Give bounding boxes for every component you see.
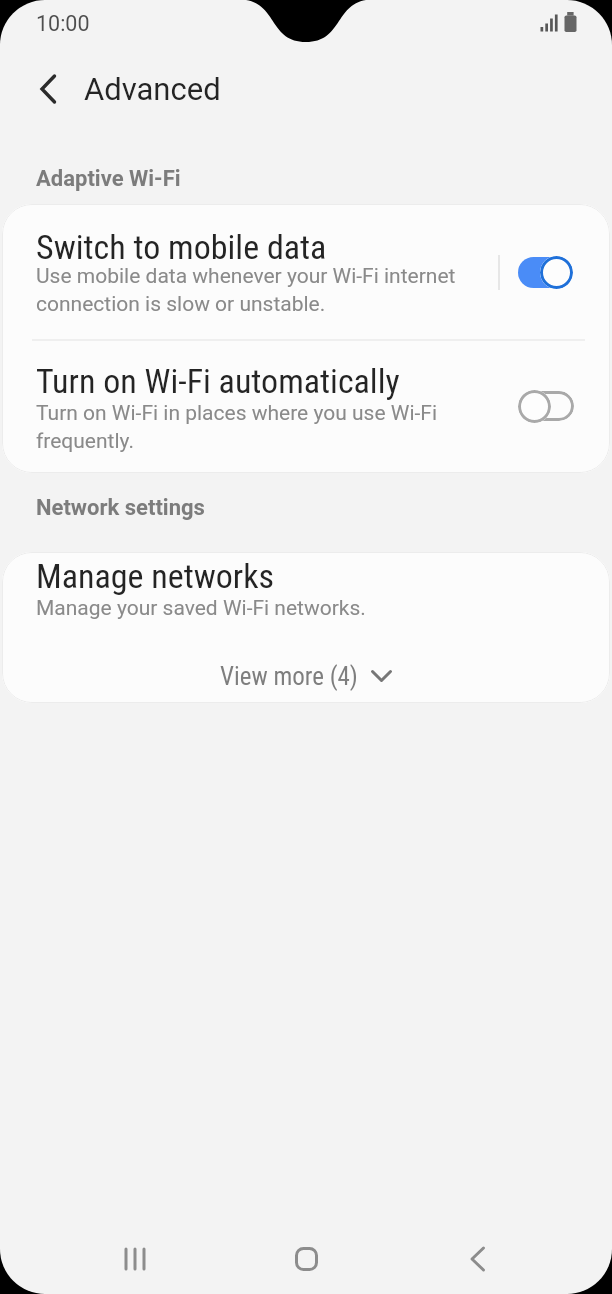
staticText: Manage networks <box>36 556 275 596</box>
staticText: Use mobile data whenever your Wi-Fi inte… <box>36 264 456 316</box>
staticText: Turn on Wi-Fi in places where you use Wi… <box>36 401 438 453</box>
button[interactable]: Switch to mobile data <box>2 204 610 339</box>
button[interactable] <box>518 389 574 423</box>
button[interactable] <box>432 1226 522 1292</box>
button[interactable]: Manage networks <box>2 552 610 647</box>
button[interactable] <box>90 1226 180 1292</box>
button[interactable] <box>261 1226 351 1292</box>
staticText: Manage your saved Wi-Fi networks. <box>36 596 366 621</box>
staticText: Network settings <box>36 495 205 521</box>
staticText: View more (4) <box>220 662 358 691</box>
staticText: Switch to mobile data <box>36 227 327 267</box>
button[interactable] <box>517 255 573 289</box>
staticText: 10:00 <box>36 11 90 36</box>
staticText: Advanced <box>84 71 221 107</box>
button[interactable]: View more (4) <box>2 656 610 696</box>
staticText: Turn on Wi-Fi automatically <box>36 361 400 401</box>
button[interactable]: Turn on Wi-Fi automatically <box>2 340 610 473</box>
button[interactable] <box>22 61 74 117</box>
staticText: Adaptive Wi-Fi <box>36 166 181 192</box>
